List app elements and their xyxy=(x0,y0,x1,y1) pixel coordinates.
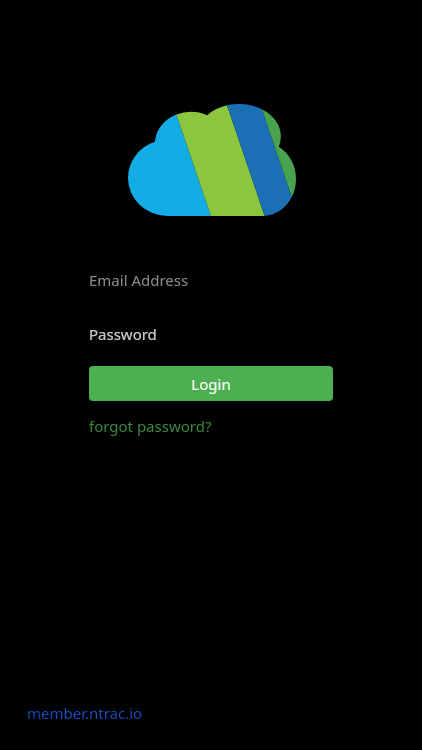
button[interactable]: Email Address xyxy=(89,263,333,297)
button[interactable]: member.ntrac.io xyxy=(27,700,143,726)
staticText: Login xyxy=(191,374,231,394)
staticText: Password xyxy=(89,324,157,344)
staticText: Email Address xyxy=(89,270,189,290)
staticText: forgot password? xyxy=(89,416,212,436)
staticText: member.ntrac.io xyxy=(27,703,143,723)
button[interactable]: Password xyxy=(89,317,333,351)
other: ntrac cloud logo xyxy=(128,104,296,216)
button[interactable]: Login xyxy=(89,366,333,401)
button[interactable]: forgot password? xyxy=(89,413,212,439)
